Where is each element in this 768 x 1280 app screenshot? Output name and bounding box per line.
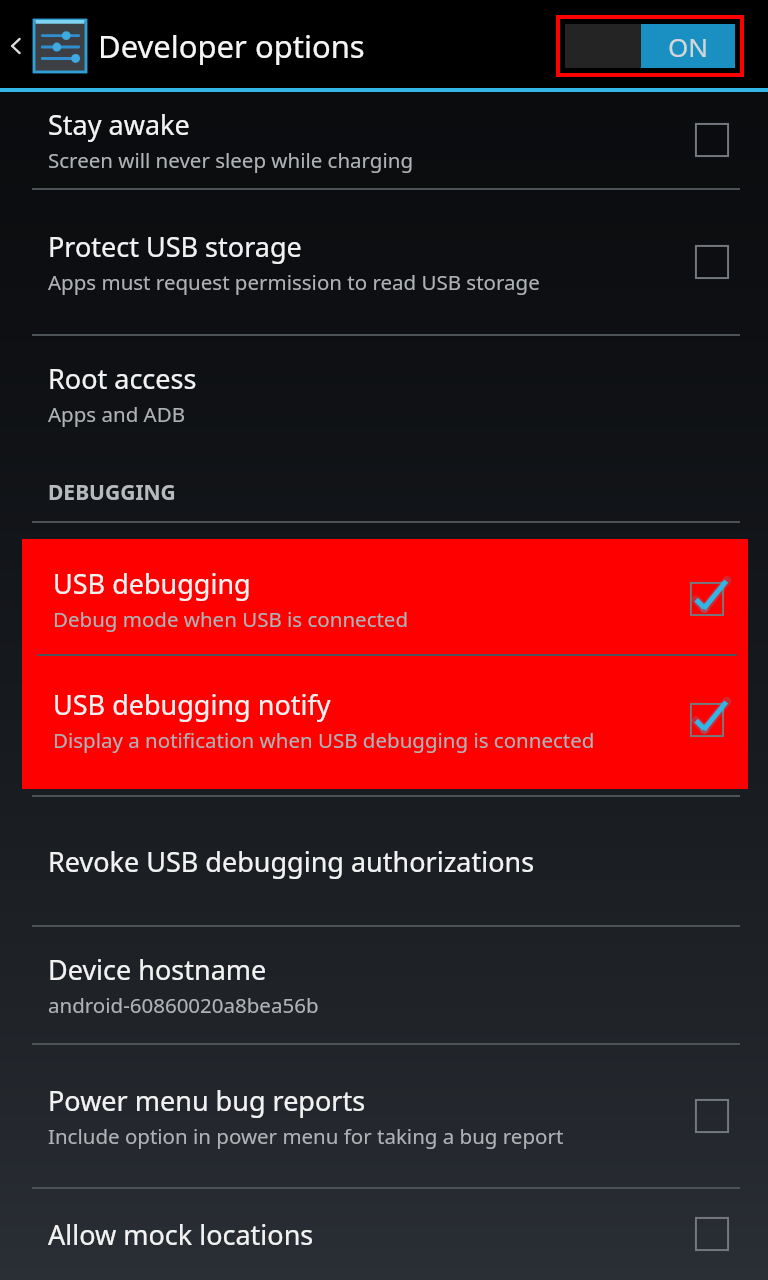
button[interactable]: Device hostname xyxy=(0,927,768,1043)
staticText: USB debugging notify xyxy=(53,686,331,723)
button[interactable]: Power menu bug reports xyxy=(0,1045,768,1187)
staticText: Revoke USB debugging authorizations xyxy=(48,843,535,880)
staticText: Root access xyxy=(48,360,197,397)
button[interactable]: Protect USB storage xyxy=(0,190,768,334)
staticText: Debug mode when USB is connected xyxy=(53,605,409,633)
button[interactable]: Back xyxy=(0,0,34,92)
staticText: ON xyxy=(668,29,709,64)
staticText: Display a notification when USB debuggin… xyxy=(53,726,595,754)
staticText: Stay awake xyxy=(48,106,190,143)
staticText: Apps and ADB xyxy=(48,400,185,428)
staticText: Device hostname xyxy=(48,951,267,988)
staticText: Developer options xyxy=(98,25,365,67)
button[interactable]: Root access xyxy=(0,336,768,452)
staticText: USB debugging xyxy=(53,565,251,602)
button[interactable]: USB debugging notify xyxy=(27,656,743,784)
button[interactable]: Stay awake xyxy=(0,92,768,188)
button[interactable]: ON xyxy=(565,24,735,68)
staticText: DEBUGGING xyxy=(48,478,176,507)
staticText: Allow mock locations xyxy=(48,1216,314,1253)
staticText: Apps must request permission to read USB… xyxy=(48,268,540,296)
staticText: Protect USB storage xyxy=(48,228,302,265)
staticText: Include option in power menu for taking … xyxy=(48,1122,564,1150)
staticText: Power menu bug reports xyxy=(48,1082,366,1119)
staticText: Screen will never sleep while charging xyxy=(48,146,414,174)
button[interactable]: Revoke USB debugging authorizations xyxy=(0,797,768,925)
button[interactable]: USB debugging xyxy=(27,544,743,654)
staticText: android-60860020a8bea56b xyxy=(48,991,319,1019)
button[interactable]: Allow mock locations xyxy=(0,1189,768,1279)
